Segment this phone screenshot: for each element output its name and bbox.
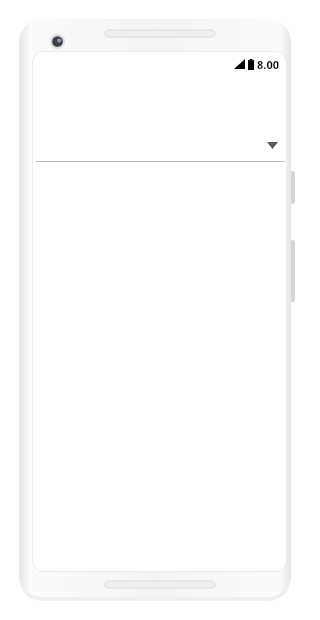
button[interactable]: Open dropdown [33,134,286,162]
other: Open dropdown [264,137,280,153]
staticText: 8.00 [257,57,279,72]
